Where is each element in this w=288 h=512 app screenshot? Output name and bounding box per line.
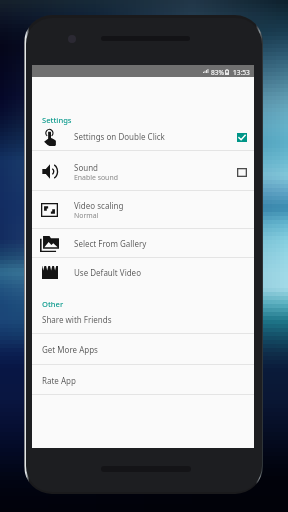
staticText: Select From Gallery (74, 238, 147, 249)
button[interactable]: Unchecked (235, 165, 249, 179)
button[interactable]: Settings on Double Click (32, 122, 254, 151)
staticText: Share with Friends (42, 314, 112, 325)
staticText: Settings on Double Click (74, 131, 165, 142)
button[interactable]: Get More Apps (32, 334, 254, 365)
button[interactable]: Select From Gallery (32, 229, 254, 258)
button[interactable]: Share with Friends (32, 304, 254, 334)
button[interactable]: Video scaling (32, 190, 254, 229)
button[interactable]: Checked (235, 130, 249, 144)
button[interactable]: Use Default Video (32, 258, 254, 287)
staticText: Sound (74, 162, 99, 173)
staticText: Enable sound (74, 173, 118, 182)
staticText: 13:53 (233, 68, 250, 77)
staticText: Use Default Video (74, 267, 141, 278)
staticText: Rate App (42, 375, 76, 386)
staticText: Get More Apps (42, 344, 98, 355)
button[interactable]: Rate App (32, 365, 254, 395)
staticText: 83% (211, 68, 225, 77)
staticText: Other (42, 299, 64, 309)
staticText: Settings (42, 115, 72, 125)
staticText: Normal (74, 211, 99, 220)
staticText: Video scaling (74, 200, 124, 211)
button[interactable]: Sound (32, 152, 254, 191)
